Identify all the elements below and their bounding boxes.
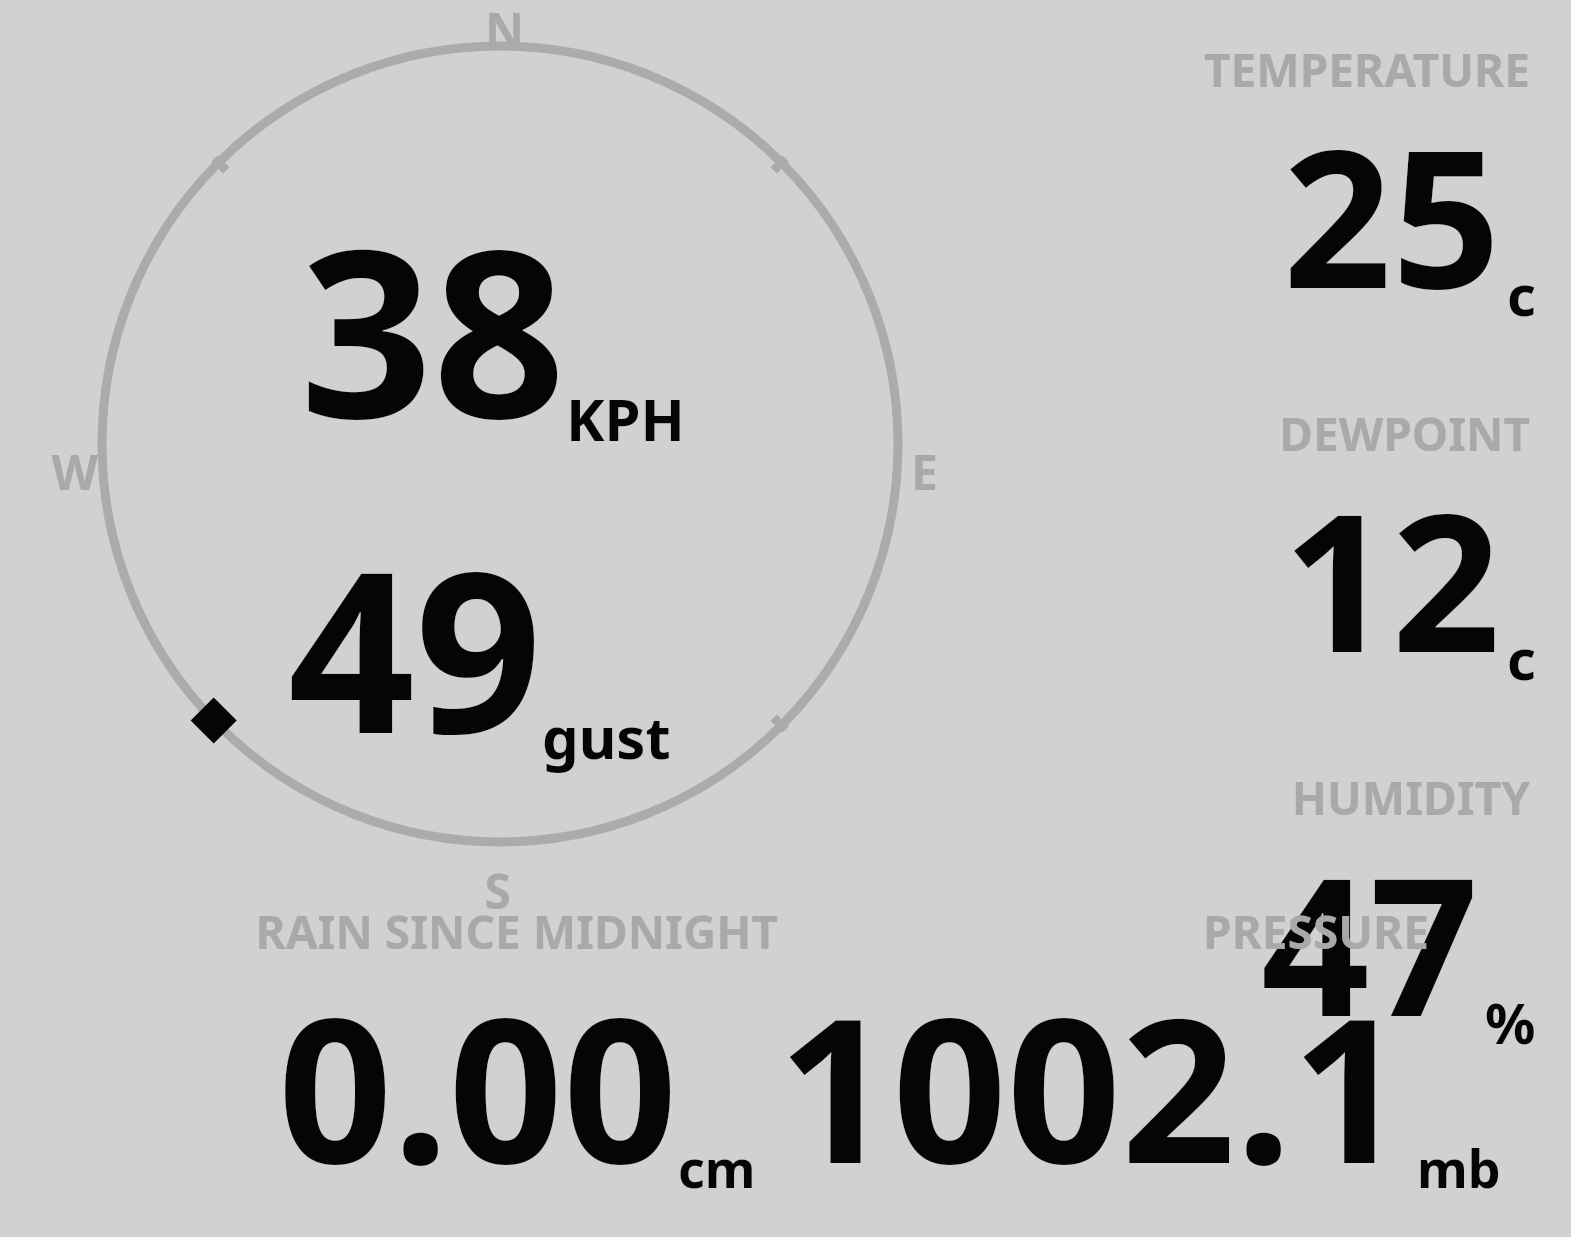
staticText: RAIN SINCE MIDNIGHT	[255, 900, 778, 963]
staticText: 47	[1261, 813, 1479, 1072]
staticText: c	[1507, 620, 1536, 696]
staticText: E	[911, 439, 938, 504]
button[interactable]: RAIN SINCE MIDNIGHT	[255, 900, 778, 1235]
staticText: 12	[1283, 449, 1501, 708]
staticText: W	[51, 439, 98, 504]
button[interactable]: HUMIDITY	[1261, 766, 1530, 1088]
staticText: c	[1507, 256, 1536, 332]
staticText: mb	[1417, 1132, 1501, 1203]
button[interactable]: TEMPERATURE	[1203, 38, 1530, 360]
button[interactable]: DEWPOINT	[1279, 402, 1530, 724]
staticText: S	[484, 858, 511, 923]
staticText: %	[1485, 984, 1536, 1060]
button[interactable]: 38	[300, 170, 685, 486]
button[interactable]: 49	[288, 496, 671, 798]
staticText: 0.00	[278, 949, 678, 1221]
staticText: TEMPERATURE	[1203, 38, 1530, 101]
staticText: PRESSURE	[1203, 900, 1429, 963]
button[interactable]: PRESSURE	[778, 900, 1491, 1235]
other: Wind direction compass	[0, 0, 1571, 1237]
staticText: cm	[678, 1132, 756, 1203]
staticText: 49	[288, 496, 542, 798]
staticText: HUMIDITY	[1291, 766, 1530, 829]
staticText: gust	[542, 697, 671, 776]
staticText: 38	[300, 170, 566, 486]
staticText: DEWPOINT	[1279, 402, 1530, 465]
staticText: 1002.1	[778, 949, 1407, 1221]
staticText: N	[484, 0, 524, 62]
staticText: 25	[1283, 85, 1501, 344]
staticText: KPH	[566, 379, 685, 458]
